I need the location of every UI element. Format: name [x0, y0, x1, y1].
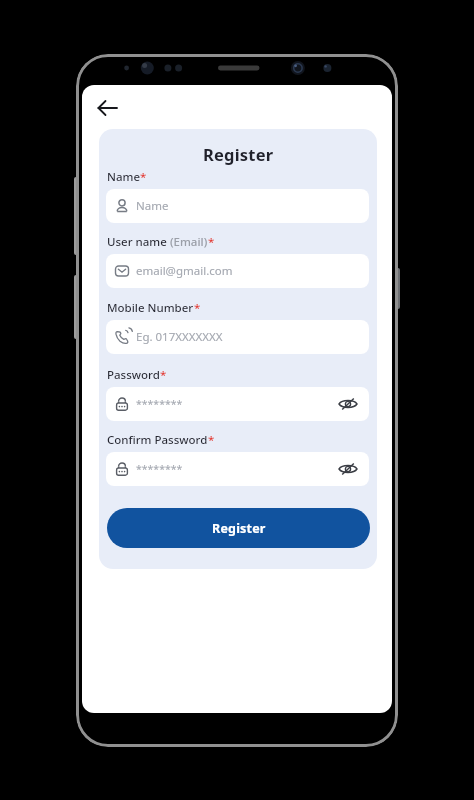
- staticText: Confirm Password: [107, 432, 208, 448]
- staticText: Register: [212, 520, 266, 537]
- button[interactable]: Name: [106, 189, 369, 223]
- staticText: (Email): [167, 234, 208, 250]
- button[interactable]: Register: [107, 508, 370, 548]
- staticText: ********: [136, 462, 183, 476]
- staticText: *: [140, 169, 147, 185]
- staticText: User name: [107, 234, 167, 250]
- staticText: Name: [107, 169, 140, 185]
- staticText: *: [208, 234, 215, 250]
- button[interactable]: Eg. 017XXXXXXX: [106, 320, 369, 354]
- staticText: Mobile Number: [107, 300, 194, 316]
- button[interactable]: ********: [106, 387, 369, 421]
- button[interactable]: ********: [106, 452, 369, 486]
- staticText: ********: [136, 397, 183, 411]
- staticText: Register: [203, 143, 274, 165]
- staticText: *: [194, 300, 201, 316]
- button[interactable]: [96, 96, 120, 120]
- staticText: Password: [107, 367, 160, 383]
- staticText: *: [208, 432, 215, 448]
- staticText: *: [160, 367, 167, 383]
- button[interactable]: email@gmail.com: [106, 254, 369, 288]
- staticText: Eg. 017XXXXXXX: [136, 329, 223, 345]
- staticText: email@gmail.com: [136, 263, 233, 279]
- staticText: Name: [136, 198, 169, 214]
